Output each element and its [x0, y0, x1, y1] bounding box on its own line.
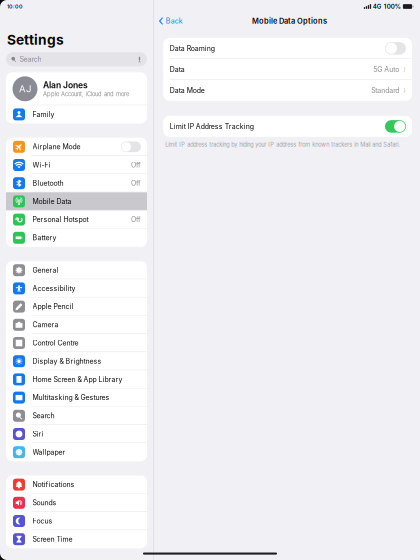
staticText: Alan Jones [43, 80, 88, 90]
button[interactable]: Control Centre [6, 334, 147, 352]
staticText: Apple Account, iCloud and more [43, 91, 129, 98]
staticText: 10:00 [7, 3, 23, 10]
button[interactable]: Wallpaper [6, 443, 147, 461]
button[interactable]: Home Screen & App Library [6, 370, 147, 388]
staticText: Data Roaming [170, 44, 215, 53]
staticText: Family [32, 110, 54, 119]
staticText: Data [170, 65, 185, 74]
staticText: Search [32, 412, 54, 420]
button[interactable]: Search [6, 407, 147, 425]
button[interactable]: Personal Hotspot [6, 210, 147, 229]
staticText: Airplane Mode [32, 143, 80, 151]
staticText: Mobile Data Options [252, 16, 327, 25]
staticText: Accessibility [32, 284, 75, 293]
staticText: Display & Brightness [32, 357, 101, 365]
button[interactable]: Display & Brightness [6, 352, 147, 370]
staticText: Bluetooth [32, 179, 63, 187]
staticText: Multitasking & Gestures [32, 393, 109, 402]
button[interactable]: Battery [6, 229, 147, 247]
staticText: Sounds [32, 499, 56, 507]
staticText: Wallpaper [32, 448, 65, 456]
button[interactable]: AJ [6, 72, 147, 105]
staticText: Home Screen & App Library [32, 375, 122, 384]
staticText: Screen Time [32, 535, 72, 543]
staticText: Off [131, 179, 141, 187]
staticText: Settings [7, 31, 64, 48]
staticText: Personal Hotspot [32, 215, 88, 224]
button[interactable]: Limit IP Address Tracking [163, 116, 412, 137]
button[interactable]: Data Mode [163, 80, 412, 101]
staticText: 4G 100% [373, 3, 401, 10]
button[interactable]: Siri [6, 425, 147, 443]
button[interactable]: Data Roaming [163, 38, 412, 59]
staticText: Data Mode [170, 86, 205, 95]
staticText: Wi-Fi [32, 161, 50, 169]
button[interactable]: Sounds [6, 494, 147, 512]
button[interactable]: Camera [6, 316, 147, 334]
staticText: AJ [19, 83, 31, 95]
button[interactable]: Data [163, 59, 412, 80]
staticText: Back [166, 17, 183, 25]
staticText: Apple Pencil [32, 302, 73, 311]
button[interactable]: Bluetooth [6, 174, 147, 192]
button[interactable]: Screen Time [6, 530, 147, 548]
staticText: Off [131, 161, 141, 169]
staticText: Siri [32, 430, 43, 438]
button[interactable]: Focus [6, 512, 147, 530]
button[interactable]: Wi-Fi [6, 156, 147, 174]
button[interactable]: Family [6, 105, 147, 123]
button[interactable]: Apple Pencil [6, 297, 147, 316]
staticText: Camera [32, 321, 58, 329]
staticText: 5G Auto [373, 65, 399, 74]
button[interactable]: Notifications [6, 475, 147, 494]
staticText: Limit IP address tracking by hiding your… [165, 141, 400, 148]
staticText: Mobile Data [32, 197, 71, 206]
button[interactable]: Multitasking & Gestures [6, 388, 147, 407]
staticText: Control Centre [32, 339, 78, 347]
staticText: General [32, 266, 58, 274]
button[interactable]: Accessibility [6, 279, 147, 297]
staticText: Limit IP Address Tracking [170, 122, 254, 131]
staticText: Battery [32, 234, 56, 242]
button[interactable]: Airplane Mode [6, 138, 147, 156]
button[interactable]: Back [154, 13, 189, 29]
staticText: Search [19, 55, 41, 63]
button[interactable]: Mobile Data [6, 192, 147, 210]
staticText: Standard [371, 86, 399, 95]
staticText: Focus [32, 517, 52, 525]
staticText: Notifications [32, 480, 74, 489]
staticText: Off [131, 215, 141, 224]
button[interactable]: General [6, 261, 147, 279]
